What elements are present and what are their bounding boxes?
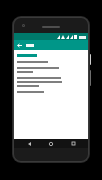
button[interactable]: Home <box>44 139 58 148</box>
button[interactable]: Recent apps <box>66 139 80 148</box>
button[interactable]: Back <box>22 139 36 148</box>
button[interactable]: Back <box>16 42 23 49</box>
